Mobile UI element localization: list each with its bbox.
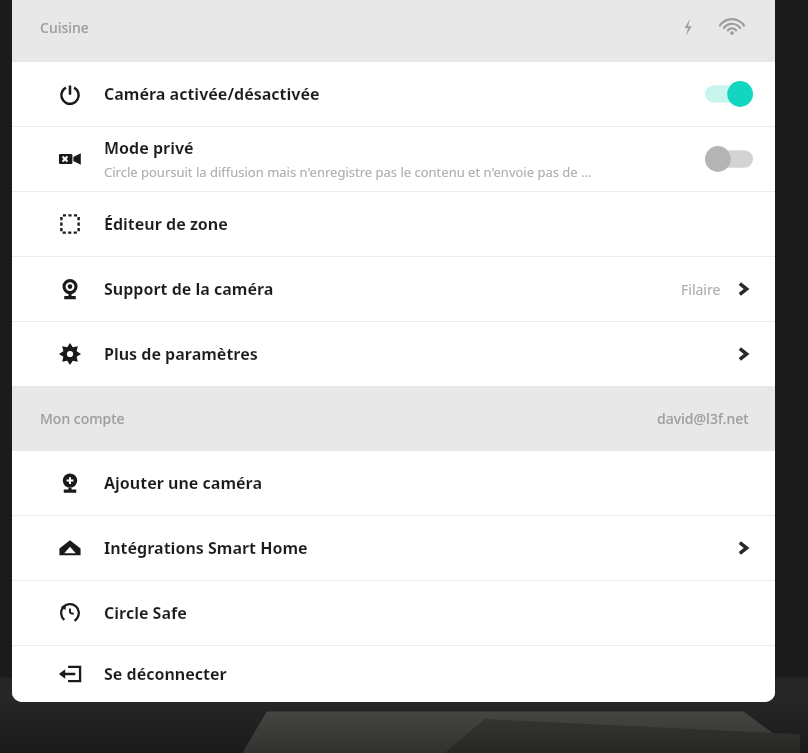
staticText: Ajouter une caméra <box>104 472 262 494</box>
staticText: Cuisine <box>40 18 89 37</box>
staticText: Se déconnecter <box>104 663 227 685</box>
other: Wi-Fi status <box>715 10 749 44</box>
button[interactable]: Plus de paramètres <box>12 322 775 386</box>
staticText: Mode privé <box>104 137 194 159</box>
button[interactable]: Ajouter une caméra <box>12 451 775 515</box>
staticText: Circle Safe <box>104 602 187 624</box>
button[interactable]: Mode privé <box>12 127 775 191</box>
button[interactable]: Éditeur de zone <box>12 192 775 256</box>
button[interactable]: Caméra activée/désactivée <box>12 62 775 126</box>
button[interactable]: Support de la caméra <box>12 257 775 321</box>
button[interactable]: Toggle on <box>703 80 755 108</box>
button[interactable]: Intégrations Smart Home <box>12 516 775 580</box>
staticText: david@l3f.net <box>657 409 749 428</box>
staticText: Support de la caméra <box>104 278 274 300</box>
staticText: Circle poursuit la diffusion mais n'enre… <box>104 163 592 181</box>
staticText: Filaire <box>681 280 721 299</box>
staticText: Plus de paramètres <box>104 343 258 365</box>
staticText: Caméra activée/désactivée <box>104 83 320 105</box>
button[interactable]: Toggle off <box>703 145 755 173</box>
button[interactable]: Circle Safe <box>12 581 775 645</box>
staticText: Éditeur de zone <box>104 213 228 235</box>
staticText: Intégrations Smart Home <box>104 537 308 559</box>
button[interactable]: Se déconnecter <box>12 646 775 702</box>
staticText: Mon compte <box>40 409 125 428</box>
other: Power status <box>671 10 705 44</box>
